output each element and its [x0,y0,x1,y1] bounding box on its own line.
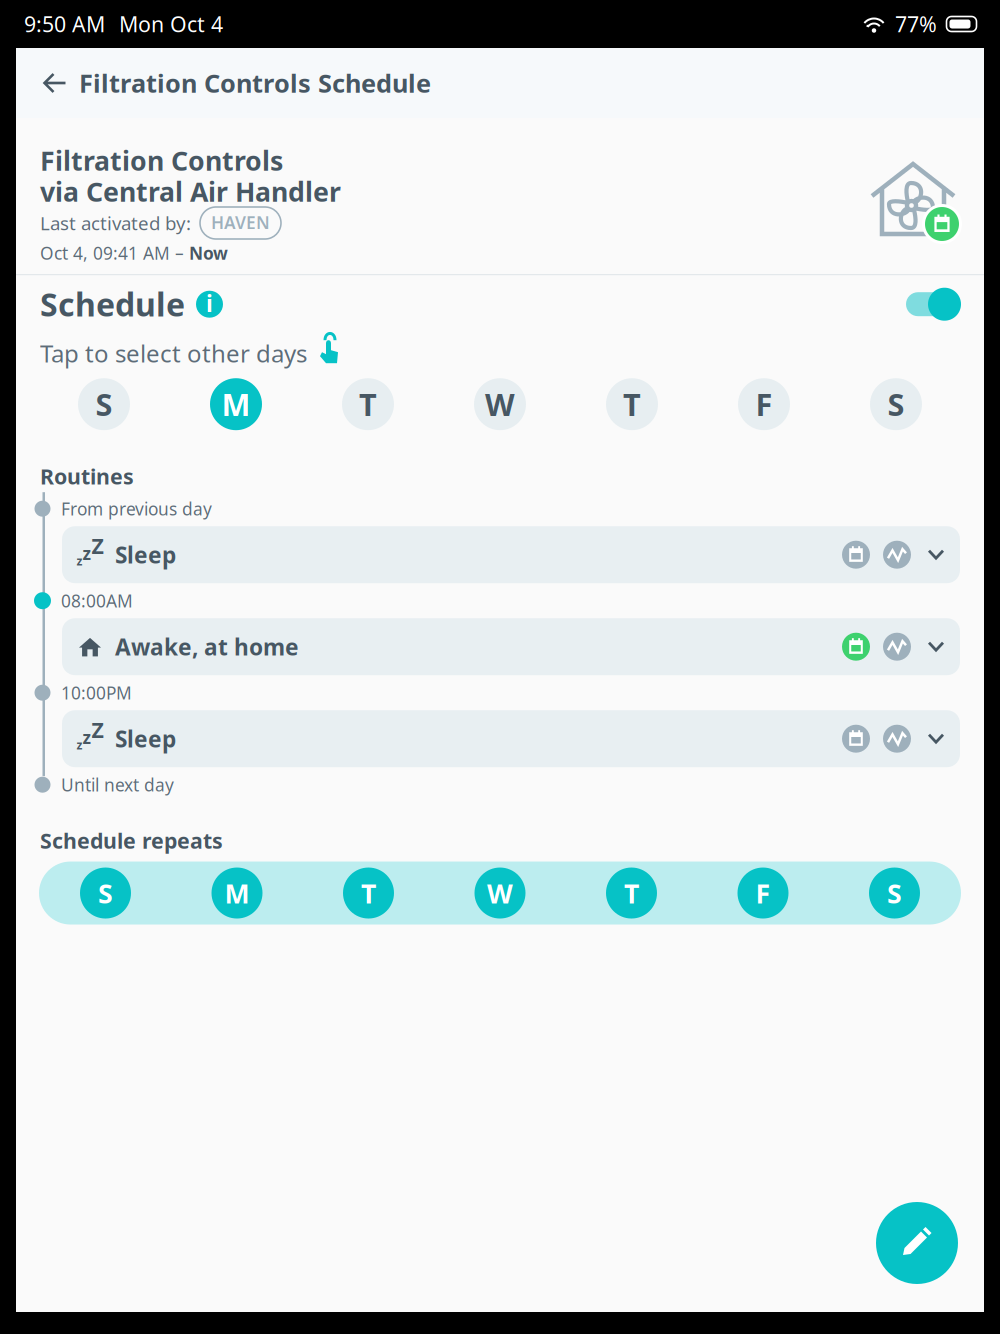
staticText: Filtration Controls [40,143,283,178]
staticText: Mon Oct 4 [119,10,223,38]
button[interactable]: S [869,867,920,918]
staticText: z [76,737,82,753]
staticText: W [487,875,513,911]
staticText: F [755,384,772,424]
staticText: Now [189,241,228,264]
staticText: Schedule repeats [40,826,223,854]
staticText: HAVEN [211,211,270,234]
staticText: Filtration Controls Schedule [79,66,431,100]
staticText: W [485,384,515,424]
button[interactable]: Awake, at home [62,618,960,675]
staticText: z [76,553,82,569]
button[interactable]: T [606,378,658,430]
staticText: 10:00PM [61,681,132,704]
button[interactable]: M [210,378,262,430]
staticText: z [82,542,91,565]
staticText: Schedule [40,283,185,325]
staticText: F [755,875,770,911]
staticText: Z [91,715,103,744]
staticText: T [623,384,641,424]
button[interactable]: S [78,378,130,430]
staticText: Oct 4, 09:41 AM – [40,241,189,264]
button[interactable]: T [342,378,394,430]
button[interactable]: T [343,867,394,918]
button[interactable]: z [62,710,960,767]
staticText: Awake, at home [115,632,299,662]
button[interactable]: Edit [876,1202,958,1284]
staticText: S [95,384,112,424]
staticText: Sleep [115,540,176,570]
staticText: Until next day [61,773,174,796]
staticText: S [98,875,113,911]
staticText: 9:50 AM [24,10,105,38]
button[interactable]: F [737,867,788,918]
staticText: T [361,875,376,911]
staticText: 08:00AM [61,589,133,612]
button[interactable]: Back [33,52,77,114]
staticText: 77% [895,10,937,38]
button[interactable]: M [211,867,262,918]
button[interactable]: W [474,867,525,918]
button[interactable]: z [62,526,960,583]
staticText: via Central Air Handler [40,174,341,209]
button[interactable]: Schedule enabled [902,286,960,322]
staticText: M [221,384,250,424]
staticText: S [887,384,904,424]
staticText: z [82,726,91,749]
button[interactable]: T [606,867,657,918]
button[interactable]: S [80,867,131,918]
staticText: S [887,875,902,911]
button[interactable]: S [870,378,922,430]
staticText: Tap to select other days [40,337,307,369]
staticText: From previous day [61,497,212,520]
button[interactable]: W [474,378,526,430]
staticText: M [224,875,249,911]
staticText: Z [91,531,103,560]
staticText: Routines [40,462,134,490]
button[interactable]: F [738,378,790,430]
staticText: Sleep [115,724,176,754]
staticText: T [624,875,639,911]
staticText: i [206,288,213,318]
staticText: Last activated by: [40,211,191,235]
staticText: T [359,384,377,424]
